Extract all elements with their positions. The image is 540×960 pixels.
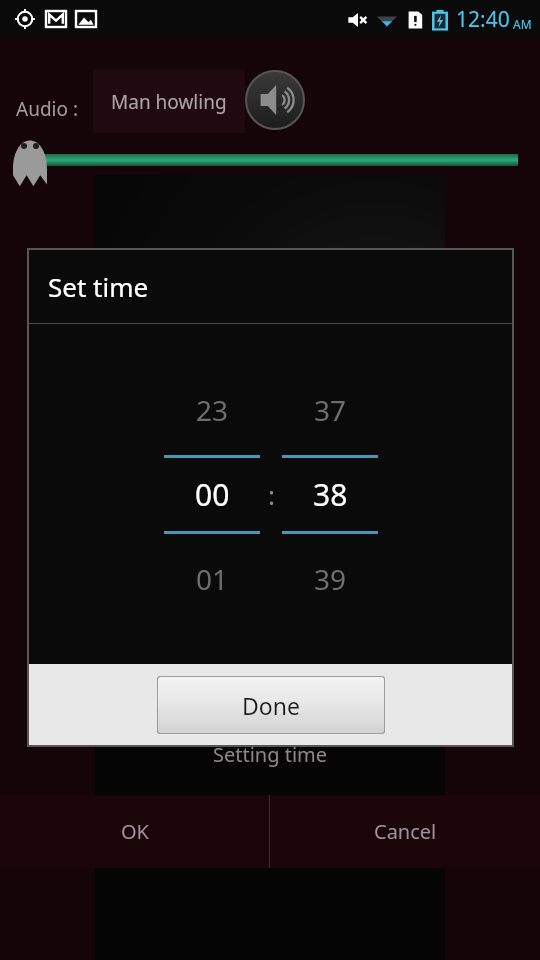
button[interactable]: Man howling <box>93 70 245 133</box>
button[interactable]: 37 <box>282 365 378 455</box>
button[interactable]: 39 <box>282 534 378 624</box>
button[interactable]: OK <box>0 795 269 868</box>
staticText: 00 <box>195 474 230 515</box>
button[interactable]: 38 <box>282 458 378 531</box>
button[interactable]: Play sound <box>245 70 305 130</box>
button[interactable]: 00 <box>164 458 260 531</box>
staticText: 23 <box>196 391 229 429</box>
staticText: 38 <box>313 474 348 515</box>
staticText: 37 <box>314 391 347 429</box>
button[interactable]: 01 <box>164 534 260 624</box>
staticText: : <box>268 477 275 512</box>
staticText: 12:40 <box>456 5 510 34</box>
button[interactable]: Volume <box>0 143 540 177</box>
staticText: Done <box>242 690 300 721</box>
staticText: AM <box>513 16 532 32</box>
staticText: Cancel <box>374 818 437 845</box>
button[interactable]: Cancel <box>270 795 540 868</box>
staticText: Man howling <box>111 89 227 115</box>
button[interactable]: 23 <box>164 365 260 455</box>
staticText: Setting time <box>0 741 540 768</box>
staticText: Audio : <box>16 96 78 122</box>
staticText: 39 <box>314 560 347 598</box>
button[interactable]: Done <box>157 676 385 734</box>
staticText: 01 <box>196 560 229 598</box>
staticText: OK <box>121 818 149 845</box>
staticText: Set time <box>48 269 149 304</box>
